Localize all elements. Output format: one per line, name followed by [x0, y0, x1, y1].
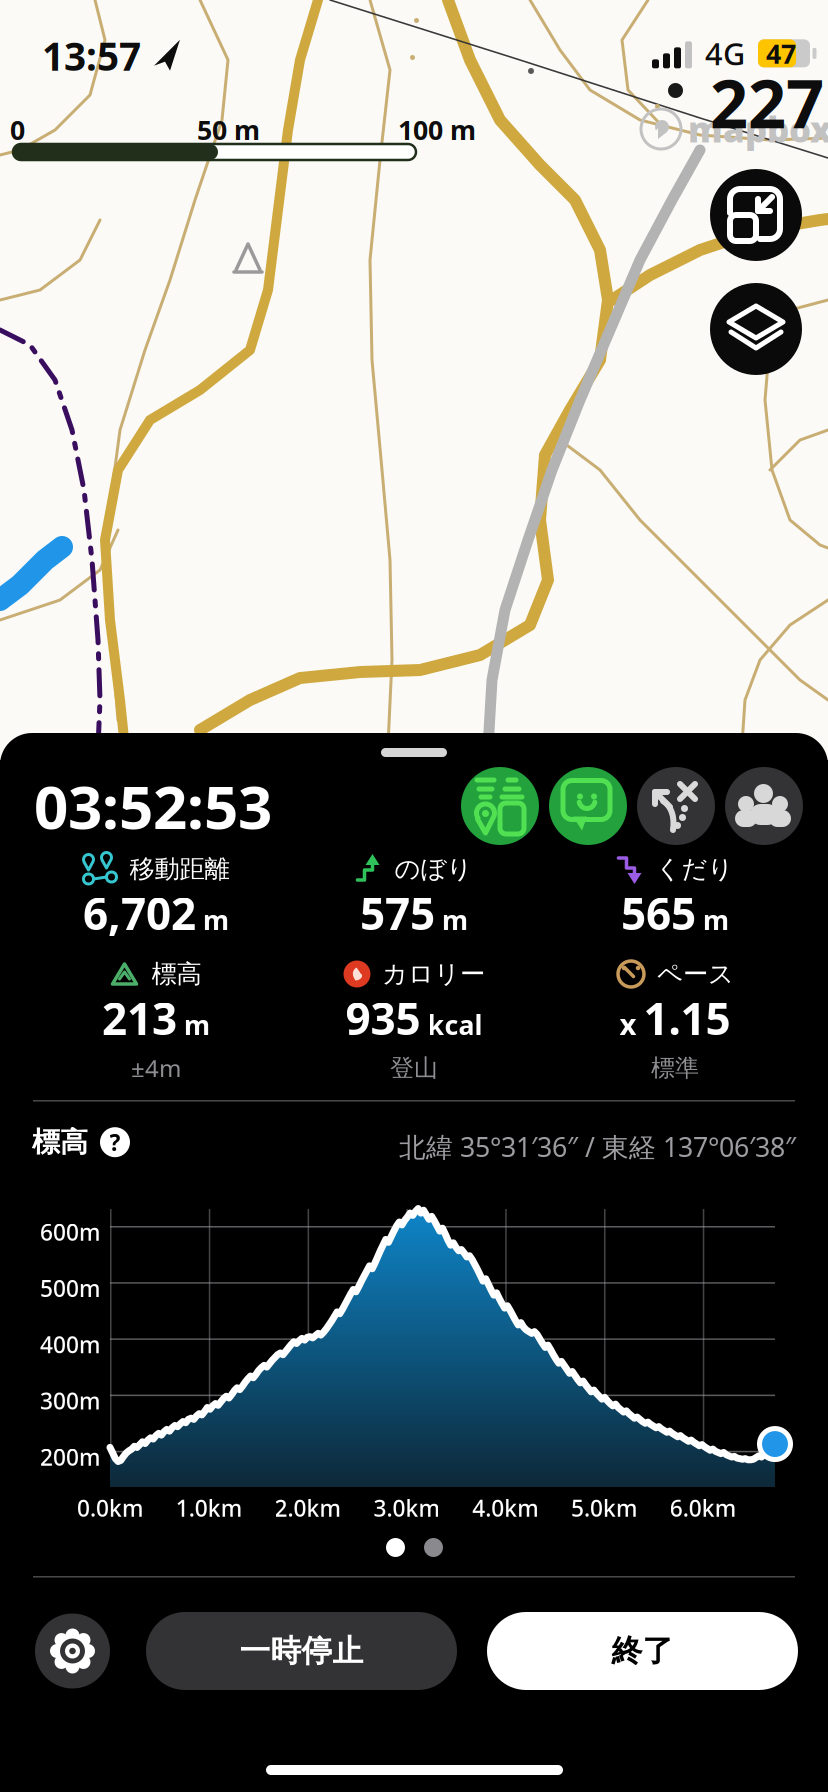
- staticText: 500m: [40, 1273, 100, 1303]
- staticText: m: [203, 902, 229, 937]
- staticText: m: [184, 1007, 210, 1042]
- button[interactable]: 一時停止: [146, 1612, 457, 1690]
- staticText: 0.0km: [77, 1493, 143, 1523]
- staticText: 5.0km: [571, 1493, 637, 1523]
- staticText: 575: [360, 884, 435, 942]
- staticText: mapbox: [688, 106, 828, 152]
- staticText: 6.0km: [670, 1493, 736, 1523]
- staticText: 1.0km: [176, 1493, 242, 1523]
- button[interactable]: 全体表示: [710, 169, 802, 261]
- staticText: 300m: [40, 1386, 100, 1416]
- staticText: 登山: [390, 1053, 438, 1083]
- staticText: カロリー: [382, 958, 485, 989]
- button[interactable]: メッセージ: [549, 767, 627, 845]
- staticText: 47: [766, 36, 796, 71]
- staticText: kcal: [427, 1007, 482, 1042]
- staticText: 213: [102, 989, 177, 1047]
- staticText: 標準: [651, 1053, 699, 1083]
- staticText: 600m: [40, 1217, 100, 1247]
- staticText: 03:52:53: [34, 766, 272, 846]
- staticText: のぼり: [394, 853, 472, 884]
- staticText: 4.0km: [472, 1493, 538, 1523]
- staticText: m: [703, 902, 729, 937]
- staticText: 一時停止: [239, 1632, 363, 1670]
- staticText: 0: [10, 112, 25, 147]
- staticText: 100 m: [398, 112, 476, 147]
- staticText: 565: [621, 884, 696, 942]
- staticText: 13:57: [42, 30, 141, 81]
- staticText: 4G: [705, 33, 745, 74]
- staticText: ペース: [657, 958, 734, 989]
- button[interactable]: 標高について: [100, 1127, 130, 1157]
- staticText: 227: [710, 58, 824, 146]
- staticText: m: [442, 902, 468, 937]
- button[interactable]: 設定: [35, 1613, 110, 1688]
- staticText: 2.0km: [275, 1493, 341, 1523]
- staticText: 3.0km: [373, 1493, 439, 1523]
- staticText: 6,702: [83, 884, 196, 942]
- staticText: ±4m: [131, 1052, 181, 1084]
- button[interactable]: 終了: [487, 1612, 798, 1690]
- button[interactable]: 地図の種類: [710, 283, 802, 375]
- staticText: 200m: [40, 1442, 100, 1472]
- staticText: 935: [345, 989, 420, 1047]
- staticText: x: [619, 1004, 636, 1043]
- button[interactable]: メンバー: [725, 767, 803, 845]
- staticText: くだり: [655, 853, 733, 884]
- staticText: 50 m: [197, 112, 260, 147]
- staticText: 移動距離: [129, 853, 229, 884]
- staticText: 標高: [151, 958, 201, 989]
- staticText: 北緯 35°31′36″ / 東経 137°06′38″: [399, 1129, 796, 1164]
- button[interactable]: ルート外れ通知: [637, 767, 715, 845]
- staticText: 1.15: [643, 989, 730, 1047]
- button[interactable]: 現在地を共有: [461, 767, 539, 845]
- staticText: ?: [109, 1127, 120, 1157]
- staticText: 400m: [40, 1329, 100, 1359]
- staticText: 標高: [32, 1125, 88, 1159]
- staticText: 終了: [611, 1632, 673, 1670]
